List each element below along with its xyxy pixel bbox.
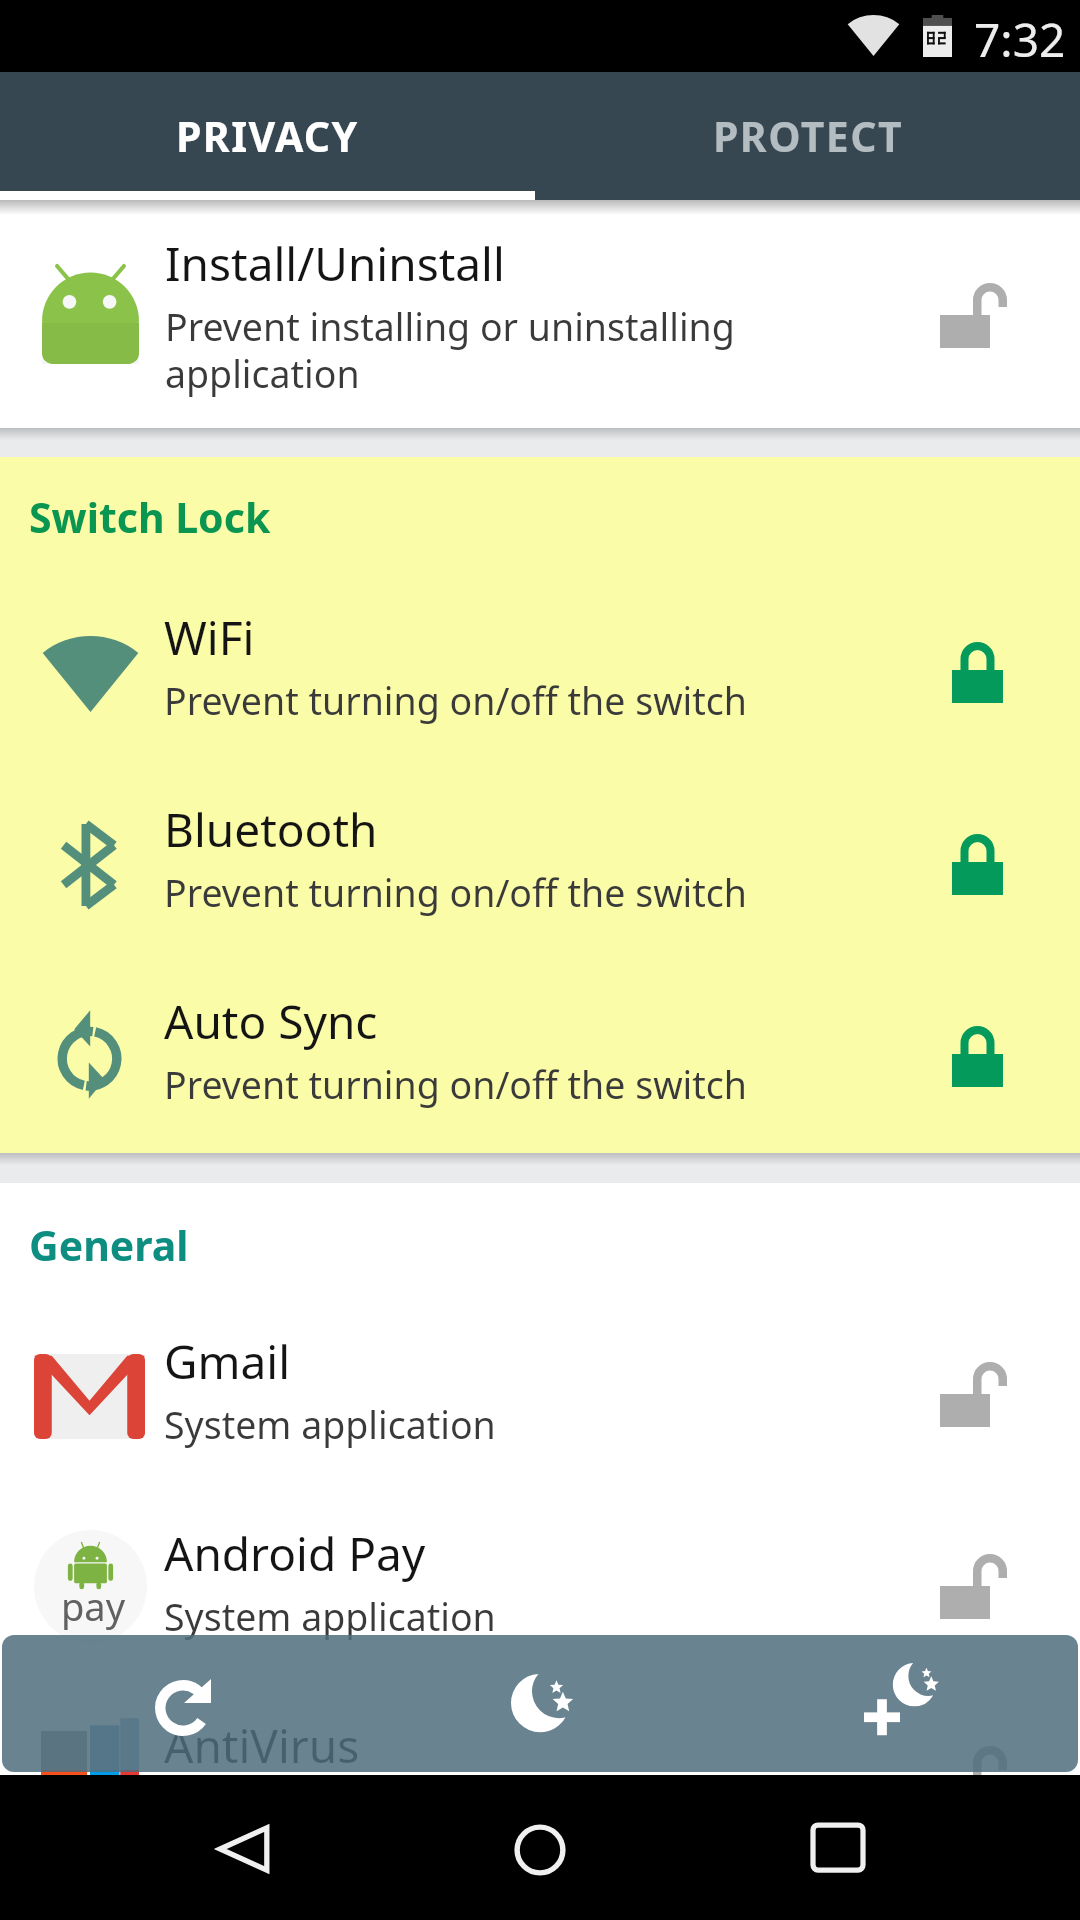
staticText: PRIVACY bbox=[176, 108, 359, 164]
button[interactable]: Refresh bbox=[153, 1672, 217, 1736]
button[interactable]: PROTECT bbox=[535, 72, 1080, 200]
staticText: Auto Sync bbox=[164, 990, 378, 1053]
staticText: Bluetooth bbox=[164, 798, 378, 861]
staticText: pay bbox=[61, 1580, 126, 1632]
button[interactable]: AntiVirus bbox=[0, 1704, 1080, 1884]
staticText: General bbox=[29, 1217, 189, 1273]
staticText: Gmail bbox=[164, 1330, 291, 1393]
button[interactable]: Bluetooth bbox=[0, 788, 1080, 968]
button[interactable]: Back bbox=[212, 1822, 275, 1875]
staticText: WiFi bbox=[164, 606, 255, 669]
button[interactable]: Recent apps bbox=[808, 1820, 868, 1875]
button[interactable]: PRIVACY bbox=[0, 72, 535, 200]
button[interactable]: Install/Uninstall bbox=[0, 200, 1080, 428]
staticText: PROTECT bbox=[713, 108, 903, 164]
staticText: System application bbox=[164, 1591, 496, 1642]
staticText: System application bbox=[164, 1783, 496, 1834]
button[interactable]: WiFi bbox=[0, 596, 1080, 776]
staticText: Android Pay bbox=[164, 1522, 426, 1585]
button[interactable]: Add night schedule bbox=[864, 1661, 936, 1735]
staticText: 7:32 bbox=[974, 8, 1066, 71]
button[interactable]: pay bbox=[0, 1512, 1080, 1692]
button[interactable]: Auto Sync bbox=[0, 980, 1080, 1160]
button[interactable]: Night mode bbox=[511, 1670, 573, 1736]
staticText: AntiVirus bbox=[164, 1714, 360, 1777]
button[interactable]: Gmail bbox=[0, 1320, 1080, 1500]
staticText: Switch Lock bbox=[29, 489, 271, 545]
staticText: Prevent turning on/off the switch bbox=[164, 675, 748, 726]
staticText: System application bbox=[164, 1399, 496, 1450]
staticText: Prevent turning on/off the switch bbox=[164, 867, 748, 918]
staticText: Prevent turning on/off the switch bbox=[164, 1059, 748, 1110]
button[interactable]: Home bbox=[508, 1818, 572, 1882]
staticText: Prevent installing or uninstalling appli… bbox=[165, 301, 735, 399]
staticText: Install/Uninstall bbox=[165, 232, 505, 295]
